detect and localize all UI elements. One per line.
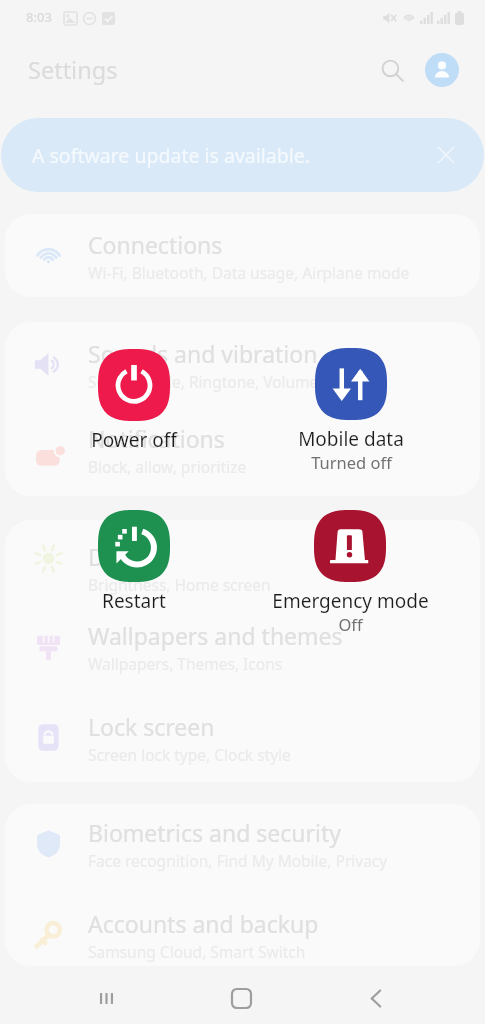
staticText: Connections [88,229,223,260]
button[interactable]: Biometrics and security [5,804,480,885]
staticText: Notifications [88,423,225,454]
button[interactable]: Power off [49,349,219,453]
button[interactable]: Mobile data [266,348,436,474]
staticText: Biometrics and security [88,817,342,848]
staticText: Wi-Fi, Bluetooth, Data usage, Airplane m… [88,262,410,283]
staticText: Accounts and backup [88,908,319,939]
button[interactable]: Search [371,49,413,91]
button[interactable]: Home [211,972,271,1024]
staticText: Restart [102,588,166,614]
button[interactable]: Lock screen [5,695,480,782]
button[interactable]: Dismiss [430,139,462,171]
staticText: Samsung Cloud, Smart Switch [88,941,306,962]
button[interactable]: Account [425,53,459,87]
button[interactable]: Wallpapers and themes [5,607,480,695]
staticText: 8:03 [26,8,52,26]
staticText: Mobile data [298,426,404,452]
staticText: Block, allow, prioritize [88,456,247,477]
button[interactable]: Notifications [5,409,480,496]
button[interactable]: Emergency mode [265,510,435,636]
staticText: Sounds and vibration [88,338,318,369]
staticText: Emergency mode [272,588,429,614]
button[interactable]: Restart [49,510,219,614]
staticText: Sound mode, Ringtone, Volume [88,371,319,392]
staticText: Wallpapers and themes [88,620,343,651]
staticText: Display [88,541,167,572]
staticText: Off [338,613,363,635]
staticText: Lock screen [88,711,215,742]
staticText: Face recognition, Find My Mobile, Privac… [88,850,388,871]
button[interactable]: Connections [5,214,480,297]
staticText: Wallpapers, Themes, Icons [88,653,283,674]
button[interactable]: A software update is available. [1,118,484,192]
button[interactable]: Recents [76,972,136,1024]
staticText: Power off [91,427,177,453]
staticText: Settings [28,54,118,86]
staticText: Brightness, Home screen [88,574,271,595]
staticText: Screen lock type, Clock style [88,744,291,765]
button[interactable]: Back [346,972,406,1024]
staticText: A software update is available. [32,142,310,169]
button[interactable]: Sounds and vibration [5,322,480,409]
staticText: Turned off [311,451,392,473]
button[interactable]: Accounts and backup [5,885,480,966]
button[interactable]: Display [5,520,480,607]
